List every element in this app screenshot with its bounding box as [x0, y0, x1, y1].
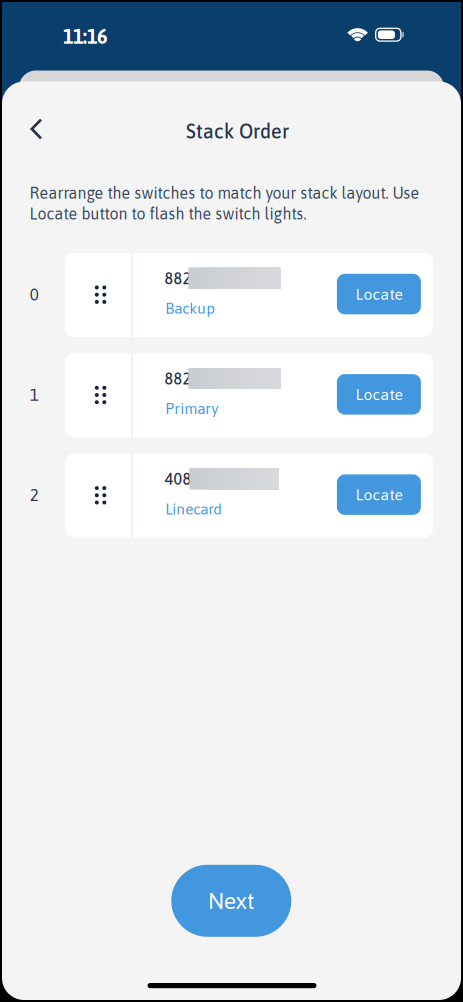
- staticText: 882: [165, 269, 192, 287]
- staticText: Primary: [165, 400, 218, 417]
- button[interactable]: 882: [65, 253, 433, 337]
- staticText: 882: [165, 369, 192, 388]
- staticText: Stack Order: [186, 120, 289, 143]
- button[interactable]: 408: [65, 454, 433, 538]
- button[interactable]: Locate: [337, 374, 421, 415]
- staticText: Backup: [165, 299, 215, 317]
- button[interactable]: 882: [65, 353, 433, 437]
- staticText: 1: [30, 385, 39, 404]
- staticText: 11:16: [63, 25, 107, 48]
- staticText: Locate: [355, 486, 402, 504]
- staticText: Linecard: [165, 500, 222, 518]
- staticText: Locate: [355, 385, 402, 403]
- staticText: Locate: [355, 285, 402, 303]
- button[interactable]: Next: [171, 865, 291, 937]
- button[interactable]: Locate: [337, 474, 421, 515]
- staticText: 0: [30, 285, 39, 304]
- staticText: 2: [30, 485, 39, 505]
- button[interactable]: Locate: [337, 274, 421, 314]
- staticText: 408: [165, 470, 192, 488]
- button[interactable]: Back: [15, 105, 61, 149]
- staticText: Next: [208, 888, 255, 914]
- staticText: Rearrange the switches to match your sta…: [30, 184, 420, 223]
